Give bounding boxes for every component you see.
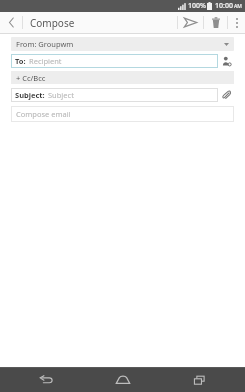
button[interactable]: Back (16, 367, 76, 392)
staticText: 100% (188, 1, 206, 11)
staticText: From: Groupwm (16, 39, 74, 49)
staticText: + Cc/Bcc (16, 73, 46, 83)
button[interactable]: Delete (204, 12, 227, 33)
button[interactable]: Subject: (11, 88, 218, 102)
staticText: AM (234, 3, 242, 10)
staticText: Subject (48, 90, 74, 100)
button[interactable]: Recent apps (169, 367, 229, 392)
button[interactable]: More options (228, 12, 245, 33)
button[interactable]: Attach file (218, 88, 234, 102)
staticText: Subject: (15, 90, 45, 100)
button[interactable]: Add contact (218, 54, 234, 68)
button[interactable]: Back (0, 12, 22, 33)
staticText: Recipient (29, 56, 62, 66)
button[interactable]: Send (178, 12, 203, 33)
button[interactable]: Compose (23, 12, 177, 33)
staticText: Compose (30, 16, 75, 30)
staticText: To: (15, 56, 26, 66)
button[interactable]: Home (93, 367, 153, 392)
staticText: 10:00 (215, 1, 233, 11)
staticText: Compose email (16, 109, 71, 119)
button[interactable]: + Cc/Bcc (11, 71, 234, 84)
button[interactable]: To: (11, 54, 218, 68)
button[interactable]: Compose email (11, 106, 234, 122)
button[interactable]: From: Groupwm (11, 37, 234, 51)
